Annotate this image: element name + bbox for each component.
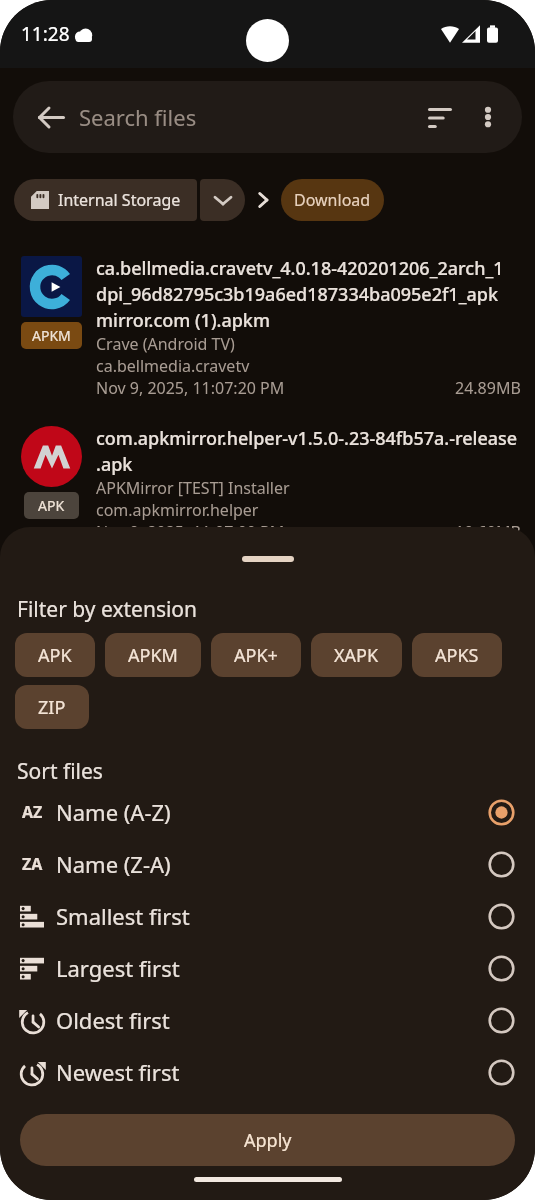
button[interactable]: AZ [0, 786, 535, 838]
staticText: com.apkmirror.helper-v1.5.0-.23-84fb57a.… [96, 426, 518, 477]
button[interactable]: Smallest first [0, 890, 535, 942]
button[interactable]: Back [28, 94, 74, 140]
staticText: Newest first [56, 1057, 180, 1087]
staticText: Sort files [17, 757, 103, 786]
staticText: Oldest first [56, 1005, 170, 1035]
button[interactable]: ZIP [15, 685, 89, 729]
staticText: ZIP [38, 695, 66, 720]
button[interactable]: APKS [412, 633, 502, 677]
button[interactable]: APK [15, 633, 95, 677]
button[interactable]: Largest first [0, 942, 535, 994]
staticText: 24.89MB [455, 377, 521, 399]
staticText: Smallest first [56, 901, 190, 931]
button[interactable]: More options [464, 93, 512, 141]
staticText: APKMirror [TEST] Installer [96, 477, 290, 499]
button[interactable]: APK [0, 399, 535, 543]
button[interactable]: Internal Storage [14, 179, 197, 221]
staticText: Nov 9, 2025, 11:07:20 PM [96, 377, 285, 399]
staticText: ZA [22, 853, 43, 875]
button[interactable]: Download [281, 179, 384, 221]
staticText: APKM [128, 643, 178, 668]
staticText: 11:28 [21, 21, 70, 47]
staticText: APK+ [234, 643, 278, 668]
staticText: APK [38, 496, 65, 515]
button[interactable]: ZA [0, 838, 535, 890]
staticText: AZ [22, 801, 43, 823]
button[interactable]: Back [13, 81, 522, 153]
staticText: ca.bellmedia.cravetv_4.0.18-420201206_2a… [96, 256, 504, 333]
staticText: APKM [32, 326, 71, 345]
staticText: 10.60MB [455, 521, 521, 543]
staticText: Download [294, 189, 371, 211]
button[interactable]: Expand path [200, 179, 245, 221]
button[interactable]: APKM [0, 221, 535, 399]
staticText: Filter by extension [17, 595, 198, 624]
button[interactable]: APK+ [211, 633, 301, 677]
button[interactable]: Newest first [0, 1046, 535, 1098]
staticText: Name (Z-A) [56, 849, 171, 879]
button[interactable]: Apply [20, 1114, 515, 1166]
staticText: APK [38, 643, 72, 668]
staticText: Apply [244, 1128, 292, 1153]
staticText: Internal Storage [58, 189, 181, 211]
button[interactable]: APKM [105, 633, 201, 677]
staticText: Search files [79, 102, 197, 132]
button[interactable]: Oldest first [0, 994, 535, 1046]
staticText: Largest first [56, 953, 180, 983]
staticText: Nov 9, 2025, 11:07:00 PM [96, 521, 285, 543]
staticText: XAPK [334, 643, 379, 668]
button[interactable]: Sort [416, 93, 464, 141]
staticText: APKS [435, 643, 479, 668]
staticText: Crave (Android TV) [96, 333, 235, 355]
staticText: ca.bellmedia.cravetv [96, 355, 250, 377]
staticText: Name (A-Z) [56, 797, 171, 827]
button[interactable]: XAPK [311, 633, 402, 677]
staticText: com.apkmirror.helper [96, 499, 259, 521]
